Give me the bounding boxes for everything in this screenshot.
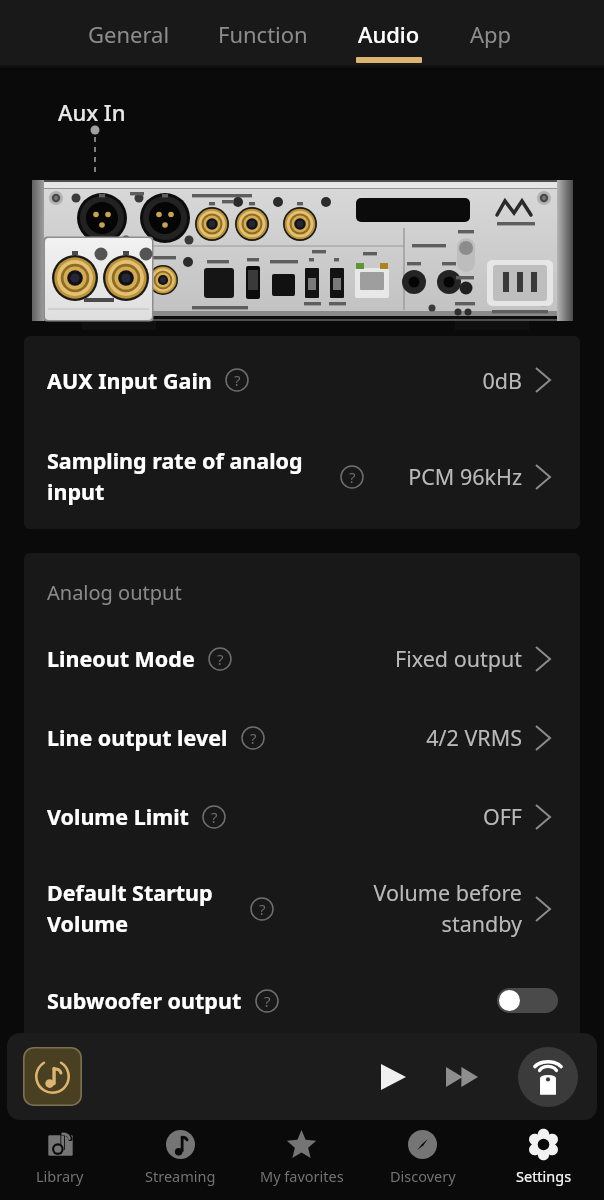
button[interactable]: Help [225,368,249,392]
staticText: General [88,19,170,49]
staticText: Sampling rate of analog input [47,446,327,507]
staticText: ? [211,807,218,827]
staticText: My favorites [260,1166,344,1186]
staticText: App [470,19,512,49]
button[interactable]: Play [371,1055,415,1099]
staticText: Function [218,19,308,49]
button[interactable]: Volume Limit [24,777,580,856]
staticText: Volume Limit [47,802,189,831]
staticText: ? [259,899,266,919]
button[interactable]: Settings [483,1120,604,1194]
button[interactable]: Next track [440,1055,484,1099]
button[interactable]: Discovery [362,1120,483,1194]
button[interactable]: Subwoofer output [24,961,580,1040]
button[interactable]: Function [194,0,332,70]
button[interactable]: AUX Input Gain [24,336,580,424]
button[interactable]: Streaming [120,1120,241,1194]
button[interactable]: Remote control [518,1047,578,1107]
staticText: Aux In [58,97,126,127]
staticText: Subwoofer output [47,986,242,1015]
staticText: Discovery [390,1166,456,1186]
button[interactable]: Lineout Mode [24,619,580,698]
button[interactable]: My favorites [241,1120,362,1194]
staticText: Default Startup Volume [47,878,237,939]
button[interactable]: App [446,0,536,70]
staticText: Settings [516,1166,572,1186]
staticText: Streaming [145,1166,216,1186]
staticText: PCM 96kHz [408,462,522,491]
button[interactable]: Help [250,897,274,921]
button[interactable]: Line output level [24,698,580,777]
button[interactable]: Default Startup Volume [24,856,580,961]
staticText: ? [264,991,271,1011]
button[interactable]: General [64,0,194,70]
staticText: Volume before standby [357,878,522,939]
button[interactable]: Sampling rate of analog input [24,424,580,529]
staticText: 4/2 VRMS [426,723,522,752]
button[interactable]: Subwoofer output toggle [497,988,558,1013]
button[interactable]: Audio [332,0,446,70]
staticText: AUX Input Gain [47,366,212,395]
button[interactable]: Help [255,989,279,1013]
button[interactable]: Help [202,805,226,829]
staticText: Lineout Mode [47,644,195,673]
staticText: ? [217,649,224,669]
staticText: ? [349,467,356,487]
button[interactable]: Help [208,647,232,671]
staticText: ? [234,370,241,390]
staticText: ? [250,728,257,748]
button[interactable]: Help [241,726,265,750]
staticText: Audio [358,19,420,49]
staticText: OFF [482,802,522,831]
staticText: Line output level [47,723,228,752]
button[interactable]: Library [0,1120,120,1194]
button[interactable]: Help [340,465,364,489]
staticText: Library [36,1166,84,1186]
staticText: 0dB [482,366,522,395]
button[interactable]: Now playing [23,1047,82,1106]
staticText: Analog output [47,579,182,606]
staticText: Fixed output [395,644,522,673]
